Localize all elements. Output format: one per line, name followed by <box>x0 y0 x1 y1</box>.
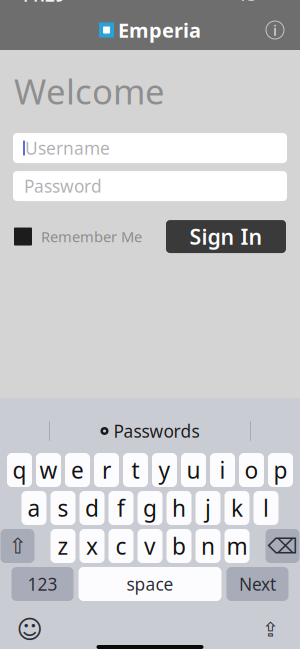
button[interactable]: Delete <box>265 529 299 563</box>
button[interactable]: u <box>181 453 206 487</box>
staticText: s <box>57 493 68 523</box>
button[interactable]: y <box>152 453 177 487</box>
button[interactable]: v <box>137 529 162 563</box>
staticText: space <box>126 572 173 595</box>
button[interactable]: g <box>137 491 162 525</box>
button[interactable]: space <box>78 567 221 601</box>
staticText: l <box>263 493 269 523</box>
button[interactable]: k <box>224 491 249 525</box>
button[interactable]: n <box>195 529 220 563</box>
button[interactable]: Remember Me <box>14 227 142 246</box>
staticText: w <box>39 455 57 485</box>
button[interactable]: f <box>108 491 133 525</box>
staticText: m <box>226 531 247 561</box>
staticText: x <box>86 531 98 561</box>
button[interactable]: a <box>21 491 46 525</box>
staticText: Emperia <box>118 17 201 43</box>
staticText: 11:29 <box>20 0 65 6</box>
button[interactable]: i <box>210 453 235 487</box>
staticText: q <box>12 455 26 485</box>
button[interactable]: w <box>36 453 61 487</box>
staticText: v <box>144 531 156 561</box>
staticText: z <box>57 531 68 561</box>
staticText: t <box>131 455 139 485</box>
staticText: b <box>172 531 186 561</box>
button[interactable]: Emoji <box>12 614 46 644</box>
staticText: i <box>273 20 277 40</box>
staticText: Welcome <box>14 68 165 114</box>
button[interactable]: p <box>268 453 293 487</box>
button[interactable]: Information <box>258 13 292 47</box>
button[interactable]: d <box>79 491 104 525</box>
button[interactable]: q <box>7 453 32 487</box>
button[interactable]: b <box>166 529 191 563</box>
staticText: h <box>172 493 186 523</box>
staticText: o <box>244 455 258 485</box>
button[interactable]: x <box>79 529 104 563</box>
staticText: g <box>143 493 157 523</box>
staticText: Password <box>24 174 102 197</box>
button[interactable]: j <box>195 491 220 525</box>
button[interactable]: Next <box>226 567 288 601</box>
button[interactable]: o <box>239 453 264 487</box>
staticText: k <box>231 493 243 523</box>
button[interactable]: l <box>253 491 278 525</box>
staticText: Next <box>239 572 276 595</box>
button[interactable]: Shift <box>0 529 34 563</box>
staticText: f <box>117 493 125 523</box>
staticText: y <box>158 455 170 485</box>
staticText: j <box>205 493 211 523</box>
button[interactable]: m <box>224 529 249 563</box>
button[interactable]: c <box>108 529 133 563</box>
staticText: ⇧ <box>8 534 26 558</box>
button[interactable]: z <box>50 529 75 563</box>
button[interactable]: 123 <box>11 567 73 601</box>
staticText: Passwords <box>113 419 199 442</box>
staticText: 123 <box>27 572 57 595</box>
button[interactable]: s <box>50 491 75 525</box>
staticText: d <box>85 493 99 523</box>
staticText: u <box>186 455 200 485</box>
button[interactable]: Passwords <box>100 419 199 442</box>
staticText: n <box>201 531 215 561</box>
staticText: p <box>273 455 287 485</box>
staticText: a <box>27 493 40 523</box>
button[interactable]: Sign In <box>166 220 286 253</box>
staticText: ⇪ <box>262 618 279 641</box>
button[interactable]: e <box>65 453 90 487</box>
staticText: Sign In <box>189 222 262 251</box>
staticText: 4G <box>237 0 256 5</box>
staticText: Remember Me <box>41 227 142 246</box>
staticText: c <box>115 531 126 561</box>
staticText: ☺ <box>16 615 42 644</box>
staticText: ⌫ <box>267 534 297 558</box>
staticText: Username <box>25 136 110 159</box>
button[interactable]: r <box>94 453 119 487</box>
staticText: r <box>102 455 111 485</box>
button[interactable]: t <box>123 453 148 487</box>
staticText: i <box>219 455 225 485</box>
staticText: e <box>71 455 84 485</box>
button[interactable]: Dictation <box>253 614 287 644</box>
button[interactable]: h <box>166 491 191 525</box>
